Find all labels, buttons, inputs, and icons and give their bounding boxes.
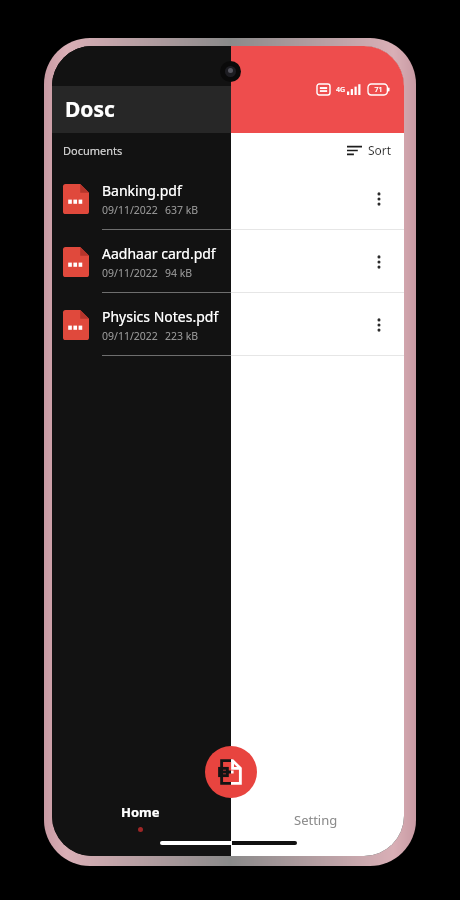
staticText: 223 kB: [165, 329, 199, 343]
button[interactable]: More options: [364, 184, 394, 214]
staticText: 09/11/2022: [102, 329, 158, 343]
staticText: 94 kB: [165, 266, 193, 280]
staticText: 71: [374, 85, 383, 95]
staticText: Physics Notes.pdf: [102, 307, 219, 326]
button[interactable]: More options: [364, 247, 394, 277]
staticText: 637 kB: [165, 203, 199, 217]
button[interactable]: Home: [52, 778, 228, 856]
staticText: Aadhaar card.pdf: [102, 244, 216, 263]
button[interactable]: More options: [364, 310, 394, 340]
staticText: Dosc: [65, 95, 115, 124]
button[interactable]: New document: [205, 746, 257, 798]
staticText: Setting: [294, 811, 338, 829]
staticText: Banking.pdf: [102, 181, 182, 200]
staticText: 09/11/2022: [102, 203, 158, 217]
staticText: 9:38 PM: [64, 82, 108, 98]
staticText: Sort: [368, 142, 392, 158]
button[interactable]: Setting: [228, 778, 404, 856]
button[interactable]: Aadhaar card.pdf: [52, 230, 404, 293]
staticText: Documents: [63, 143, 123, 158]
button[interactable]: Banking.pdf: [52, 167, 404, 230]
staticText: 4G: [336, 85, 346, 95]
staticText: 09/11/2022: [102, 266, 158, 280]
button[interactable]: Sort: [341, 138, 398, 162]
button[interactable]: Physics Notes.pdf: [52, 293, 404, 356]
staticText: Home: [121, 803, 160, 821]
